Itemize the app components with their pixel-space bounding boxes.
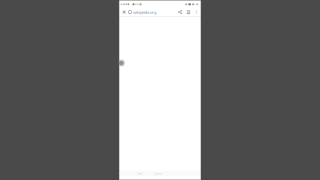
button[interactable]: Close tab bbox=[120, 7, 128, 17]
button[interactable]: wikipedia.org bbox=[128, 7, 156, 17]
button[interactable]: Privacy policy bbox=[137, 173, 143, 174]
button[interactable]: More options bbox=[193, 7, 200, 17]
staticText: wikipedia.org bbox=[133, 9, 156, 15]
button[interactable]: Download page bbox=[184, 7, 193, 17]
button[interactable]: Share bbox=[176, 7, 184, 17]
